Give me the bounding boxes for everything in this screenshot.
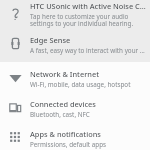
other: Apps and notifications [0,131,30,144]
staticText: Network & Internet [30,69,99,79]
staticText: Tap here to customize your audio setting… [30,12,147,28]
button[interactable]: Connected devices [0,99,150,119]
staticText: Bluetooth, cast, NFC [30,110,90,119]
staticText: Connected devices [30,99,96,109]
button[interactable]: Apps and notifications [0,129,150,149]
staticText: Edge Sense [30,35,71,45]
staticText: Permissions, default apps [30,140,107,149]
staticText: HTC USonic with Active Noise Cancella… [30,1,147,11]
button[interactable]: Edge Sense [0,35,150,55]
other: Network and Internet [0,71,30,84]
other: Edge Sense [0,37,30,50]
other: HTC USonic settings [0,7,30,20]
button[interactable]: Network and Internet [0,69,150,89]
staticText: Apps & notifications [30,129,101,139]
staticText: Wi-Fi, mobile, data usage, hotspot [30,80,131,89]
staticText: A fast, easy way to interact with your p… [30,46,147,55]
other: Connected devices [0,101,30,114]
button[interactable]: HTC USonic settings [0,1,150,28]
